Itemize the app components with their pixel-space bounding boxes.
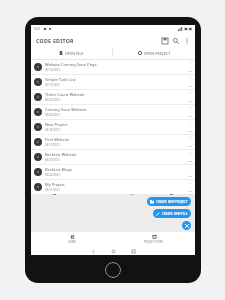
button[interactable]: Info <box>187 150 193 156</box>
staticText: i <box>190 61 191 65</box>
button[interactable]: Info <box>187 120 193 126</box>
staticText: CREATE NEW FILE <box>162 212 188 216</box>
staticText: 03/11/2021 <box>45 188 60 192</box>
button[interactable]: Info <box>187 60 193 66</box>
button[interactable]: New Project <box>31 120 195 134</box>
button[interactable]: Coming Soon Website <box>31 105 195 119</box>
button[interactable]: Info <box>187 165 193 171</box>
staticText: BeckList Website <box>45 152 77 157</box>
button[interactable]: BeckList Blogs <box>31 165 195 179</box>
button[interactable]: Back <box>89 247 97 255</box>
button[interactable]: CREATE NEW PROJECT <box>147 197 191 206</box>
staticText: Coming Soon Website <box>45 107 87 112</box>
button[interactable]: More <box>187 113 193 119</box>
staticText: 05/12/2021 <box>45 68 60 72</box>
button[interactable]: OPEN FILE <box>31 47 112 59</box>
staticText: BeckList Blogs <box>45 167 72 172</box>
button[interactable]: Close actions <box>182 221 191 230</box>
button[interactable]: Recents <box>129 247 137 255</box>
button[interactable]: Info <box>187 105 193 111</box>
button[interactable]: PROJECT STORE <box>113 232 195 246</box>
staticText: i <box>190 91 191 95</box>
button[interactable]: More <box>187 188 193 194</box>
staticText: Website Coming Soon Page <box>45 62 97 67</box>
staticText: i <box>190 136 191 140</box>
staticText: CREATE NEW PROJECT <box>156 200 188 204</box>
staticText: 05/11/2021 <box>45 83 60 87</box>
button[interactable]: More <box>187 158 193 164</box>
button[interactable]: First Website <box>31 135 195 149</box>
button[interactable]: CREATE NEW FILE <box>153 209 191 218</box>
button[interactable]: Info <box>187 180 193 186</box>
staticText: 03/22/2021 <box>45 173 60 177</box>
button[interactable]: More <box>187 98 193 104</box>
button[interactable]: More <box>187 143 193 149</box>
staticText: Ticket Count Website <box>45 92 85 97</box>
staticText: PROJECT STORE <box>144 240 164 244</box>
button[interactable]: More <box>187 83 193 89</box>
staticText: My Project <box>45 182 65 187</box>
button[interactable]: Info <box>187 75 193 81</box>
staticText: 04/27/2021 <box>45 98 60 102</box>
button[interactable]: Home <box>105 262 121 278</box>
staticText: OPEN PROJECT <box>144 51 171 56</box>
button[interactable]: Save <box>159 35 170 46</box>
staticText: i <box>190 106 191 110</box>
button[interactable]: Website Coming Soon Page <box>31 60 195 74</box>
staticText: CODE EDITOR <box>36 37 74 44</box>
staticText: i <box>190 151 191 155</box>
button[interactable]: More <box>187 128 193 134</box>
button[interactable]: Home <box>109 247 117 255</box>
staticText: OPEN FILE <box>65 51 84 56</box>
staticText: i <box>190 181 191 185</box>
button[interactable]: Ticket Count Website <box>31 90 195 104</box>
button[interactable]: Info <box>187 135 193 141</box>
button[interactable]: HOME <box>31 232 113 246</box>
staticText: 03/30/2021 <box>45 158 60 162</box>
button[interactable]: BeckList Website <box>31 150 195 164</box>
button[interactable]: OPEN PROJECT <box>113 47 195 59</box>
staticText: 04/12/2021 <box>45 143 60 147</box>
button[interactable]: More options <box>181 35 192 46</box>
button[interactable]: Info <box>187 90 193 96</box>
button[interactable]: More <box>187 68 193 74</box>
staticText: New Project <box>45 122 68 127</box>
staticText: Simple Todo List <box>45 77 76 82</box>
button[interactable]: Search <box>170 35 181 46</box>
staticText: HOME <box>68 240 76 244</box>
staticText: i <box>190 166 191 170</box>
staticText: i <box>190 76 191 80</box>
button[interactable]: My Project <box>31 180 195 194</box>
staticText: i <box>190 121 191 125</box>
button[interactable]: More <box>187 173 193 179</box>
staticText: 04/18/2021 <box>45 128 60 132</box>
staticText: First Website <box>45 137 70 142</box>
button[interactable]: Simple Todo List <box>31 75 195 89</box>
staticText: 04/20/2021 <box>45 113 60 117</box>
staticText: 9:41 <box>34 27 41 31</box>
